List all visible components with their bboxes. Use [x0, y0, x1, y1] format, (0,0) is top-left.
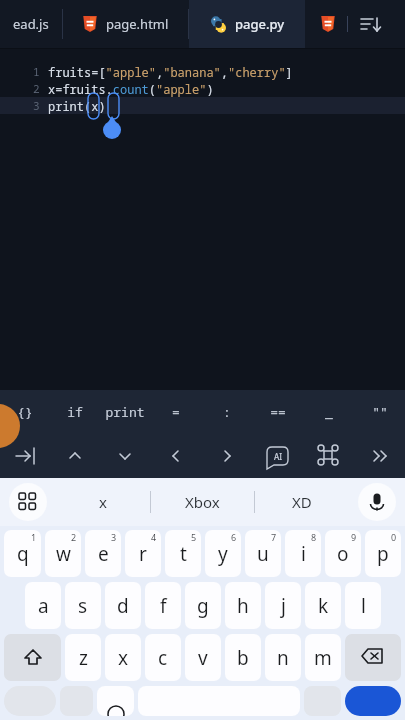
staticText: s — [78, 593, 88, 619]
button[interactable]: d — [105, 582, 141, 629]
button[interactable]: Sort — [354, 9, 384, 39]
staticText: print — [105, 403, 145, 421]
button[interactable]: i — [285, 530, 321, 577]
staticText: "" — [372, 403, 388, 421]
staticText: fruits=["apple","banana","cherry"] — [48, 64, 293, 80]
button[interactable]: page.html — [63, 0, 188, 48]
staticText: b — [237, 645, 249, 671]
staticText: n — [277, 645, 289, 671]
button[interactable]: "" — [354, 390, 405, 434]
button[interactable]: Command — [303, 434, 354, 478]
button[interactable]: e — [85, 530, 121, 577]
button[interactable]: w — [45, 530, 81, 577]
staticText: : — [223, 403, 231, 421]
button[interactable]: Backspace — [345, 634, 401, 681]
button[interactable]: Xbox — [151, 478, 254, 526]
button[interactable]: k — [305, 582, 341, 629]
button[interactable]: Voice input — [349, 478, 405, 526]
staticText: x — [99, 492, 107, 512]
staticText: j — [281, 593, 286, 619]
staticText: ead.js — [13, 15, 49, 33]
staticText: 2 — [71, 531, 77, 543]
button[interactable]: Tab — [0, 434, 50, 478]
staticText: 1 — [31, 531, 37, 543]
button[interactable]: j — [265, 582, 301, 629]
button[interactable]: Emoji — [97, 686, 134, 716]
staticText: q — [17, 541, 29, 567]
staticText: i — [301, 541, 306, 567]
button[interactable]: q — [4, 530, 41, 577]
button[interactable]: t — [165, 530, 201, 577]
staticText: u — [257, 541, 269, 567]
button[interactable]: {} — [0, 390, 50, 434]
staticText: 3 — [111, 531, 117, 543]
button[interactable]: Enter — [345, 686, 401, 716]
staticText: AI — [274, 451, 283, 462]
button[interactable]: _ — [303, 390, 354, 434]
staticText: z — [79, 645, 88, 671]
button[interactable]: m — [305, 634, 341, 681]
staticText: 1 — [33, 64, 40, 79]
button[interactable]: Left — [150, 434, 201, 478]
button[interactable]: if — [50, 390, 100, 434]
button[interactable]: g — [185, 582, 221, 629]
button[interactable]: a — [25, 582, 61, 629]
button[interactable]: == — [252, 390, 303, 434]
staticText: Xbox — [185, 492, 220, 512]
button[interactable]: b — [225, 634, 261, 681]
button[interactable]: o — [325, 530, 361, 577]
staticText: 2 — [33, 81, 40, 96]
button[interactable]: XD — [255, 478, 349, 526]
button[interactable]: c — [145, 634, 181, 681]
staticText: o — [337, 541, 349, 567]
button[interactable]: u — [245, 530, 281, 577]
staticText: == — [270, 403, 286, 421]
button[interactable]: f — [145, 582, 181, 629]
button[interactable]: Down — [100, 434, 150, 478]
button[interactable]: print — [100, 390, 150, 434]
button[interactable]: s — [65, 582, 101, 629]
staticText: print(x) — [48, 98, 106, 114]
staticText: 4 — [151, 531, 157, 543]
staticText: 6 — [231, 531, 237, 543]
staticText: f — [160, 593, 167, 619]
staticText: 9 — [351, 531, 357, 543]
button[interactable]: HTML file — [315, 11, 341, 37]
button[interactable]: z — [65, 634, 101, 681]
button[interactable]: Symbols — [4, 686, 56, 716]
button[interactable]: p — [365, 530, 401, 577]
staticText: 7 — [271, 531, 277, 543]
button[interactable]: AI assistant — [252, 434, 303, 478]
button[interactable]: l — [345, 582, 381, 629]
button[interactable]: y — [205, 530, 241, 577]
button[interactable]: Toolbar — [0, 478, 56, 526]
staticText: p — [377, 541, 389, 567]
staticText: 0 — [391, 531, 397, 543]
staticText: if — [67, 403, 83, 421]
button[interactable]: More — [354, 434, 405, 478]
button[interactable]: = — [150, 390, 201, 434]
staticText: 3 — [33, 98, 40, 113]
staticText: XD — [292, 492, 312, 512]
button[interactable]: ead.js — [0, 0, 62, 48]
staticText: m — [314, 645, 332, 671]
button[interactable]: x — [56, 478, 150, 526]
button[interactable]: Shift — [4, 634, 61, 681]
button[interactable]: Right — [201, 434, 252, 478]
button[interactable]: x — [105, 634, 141, 681]
button[interactable]: : — [201, 390, 252, 434]
staticText: d — [117, 593, 129, 619]
staticText: h — [237, 593, 249, 619]
button[interactable]: r — [125, 530, 161, 577]
button[interactable]: v — [185, 634, 221, 681]
staticText: 5 — [191, 531, 197, 543]
button[interactable] — [60, 686, 93, 716]
button[interactable]: page.py — [189, 0, 305, 48]
button[interactable]: Up — [50, 434, 100, 478]
staticText: page.py — [235, 15, 285, 33]
staticText: x=fruits.count("apple") — [48, 81, 214, 97]
button[interactable]: h — [225, 582, 261, 629]
button[interactable]: n — [265, 634, 301, 681]
